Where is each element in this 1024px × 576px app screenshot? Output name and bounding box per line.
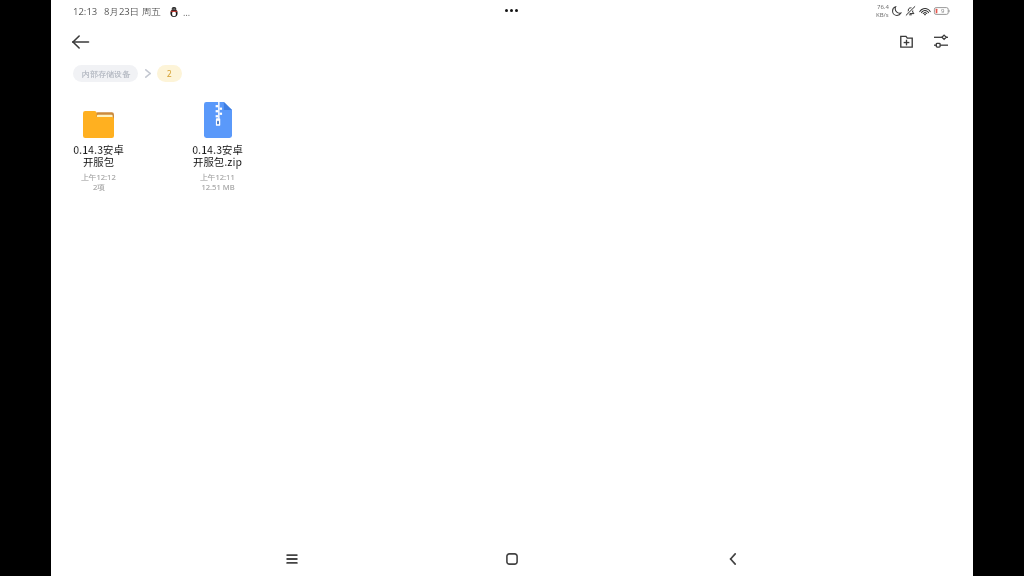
- staticText: 9: [941, 7, 945, 15]
- button[interactable]: Sort and view options: [923, 24, 958, 59]
- staticText: KB/s: [876, 11, 889, 19]
- staticText: 12:13: [73, 5, 98, 18]
- button[interactable]: 内部存储设备: [73, 65, 138, 82]
- staticText: 8月23日 周五: [104, 5, 161, 18]
- staticText: …: [183, 6, 191, 18]
- button[interactable]: Recent apps: [270, 537, 314, 576]
- button[interactable]: Home: [490, 537, 534, 576]
- staticText: 0.14.3安卓 开服包: [73, 142, 124, 169]
- staticText: 2: [167, 68, 172, 79]
- staticText: 2项: [93, 182, 105, 192]
- staticText: 12.51 MB: [201, 182, 235, 192]
- staticText: 上午12:12: [81, 172, 116, 182]
- staticText: 0.14.3安卓 开服包.zip: [192, 142, 243, 169]
- button[interactable]: New folder: [889, 24, 924, 59]
- button[interactable]: Back: [711, 537, 755, 576]
- staticText: 上午12:11: [200, 172, 235, 182]
- button[interactable]: 2: [157, 65, 182, 82]
- button[interactable]: Back: [62, 23, 99, 60]
- staticText: 76.4: [877, 3, 889, 11]
- staticText: 内部存储设备: [82, 69, 130, 79]
- button[interactable]: 0.14.3安卓 开服包: [39, 95, 158, 192]
- button[interactable]: 0.14.3安卓 开服包.zip: [158, 95, 277, 192]
